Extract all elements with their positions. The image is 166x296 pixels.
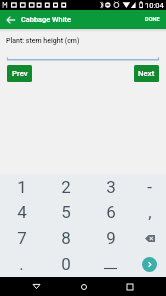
button[interactable]: 7 bbox=[0, 225, 43, 251]
button[interactable]: 8 bbox=[43, 225, 88, 251]
staticText: Next bbox=[138, 69, 155, 78]
button[interactable]: Prev bbox=[7, 65, 32, 82]
button[interactable]: 2 bbox=[43, 174, 88, 199]
button[interactable]: 4 bbox=[0, 199, 43, 225]
button[interactable]: 0 bbox=[43, 251, 88, 277]
staticText: 2 bbox=[61, 177, 71, 197]
staticText: Prev bbox=[12, 69, 28, 78]
staticText: - bbox=[147, 177, 152, 197]
staticText: 8 bbox=[61, 228, 71, 248]
button[interactable]: . bbox=[0, 251, 43, 277]
staticText: 6 bbox=[106, 202, 116, 222]
staticText: Plant: stem height (cm) bbox=[6, 37, 80, 45]
button[interactable]: Back bbox=[27, 277, 46, 296]
staticText: Cabbage White bbox=[21, 15, 72, 24]
button[interactable]: 1 bbox=[0, 174, 43, 199]
button[interactable]: Next bbox=[134, 65, 159, 82]
staticText: 7 bbox=[17, 228, 27, 248]
button[interactable]: Navigate up bbox=[0, 10, 21, 29]
staticText: , bbox=[148, 202, 152, 222]
button[interactable]: 3 bbox=[88, 174, 133, 199]
staticText: 3 bbox=[106, 177, 116, 197]
button[interactable]: Delete bbox=[133, 225, 166, 251]
button[interactable]: Home bbox=[74, 277, 93, 296]
button[interactable]: , bbox=[133, 199, 166, 225]
button[interactable]: Recent apps bbox=[120, 277, 139, 296]
staticText: 0 bbox=[61, 254, 71, 274]
button[interactable]: 5 bbox=[43, 199, 88, 225]
staticText: DONE bbox=[145, 16, 160, 23]
button[interactable] bbox=[88, 251, 133, 277]
staticText: 9 bbox=[106, 228, 116, 248]
button[interactable]: 9 bbox=[88, 225, 133, 251]
button[interactable]: DONE bbox=[139, 10, 166, 29]
staticText: 4 bbox=[17, 202, 27, 222]
staticText: 10:04 bbox=[145, 1, 164, 10]
button[interactable]: Enter bbox=[133, 251, 166, 277]
staticText: 5 bbox=[61, 202, 71, 222]
button[interactable]: - bbox=[133, 174, 166, 199]
button[interactable]: 6 bbox=[88, 199, 133, 225]
staticText: . bbox=[19, 254, 24, 274]
staticText: 1 bbox=[17, 177, 27, 197]
